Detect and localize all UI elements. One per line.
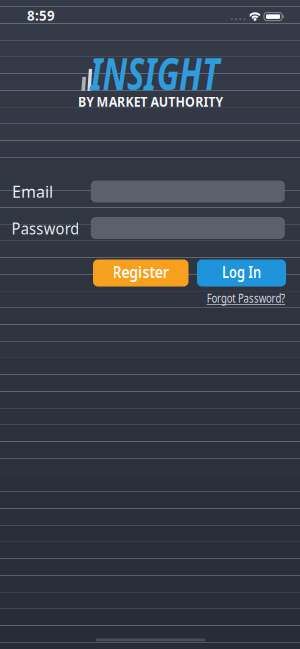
staticText: BY MARKET AUTHORITY [72,93,228,110]
button[interactable]: Register [93,259,188,286]
button[interactable]: Log In [197,259,286,286]
staticText: Log In [217,261,266,282]
staticText: Email [12,181,53,202]
staticText: 8:59 [27,7,55,24]
button[interactable]: Forgot Password? [197,290,295,306]
button[interactable] [91,180,285,202]
staticText: Password [8,218,82,239]
staticText: Register [109,261,173,282]
staticText: INSIGHT [67,44,241,102]
staticText: Forgot Password? [197,290,295,306]
